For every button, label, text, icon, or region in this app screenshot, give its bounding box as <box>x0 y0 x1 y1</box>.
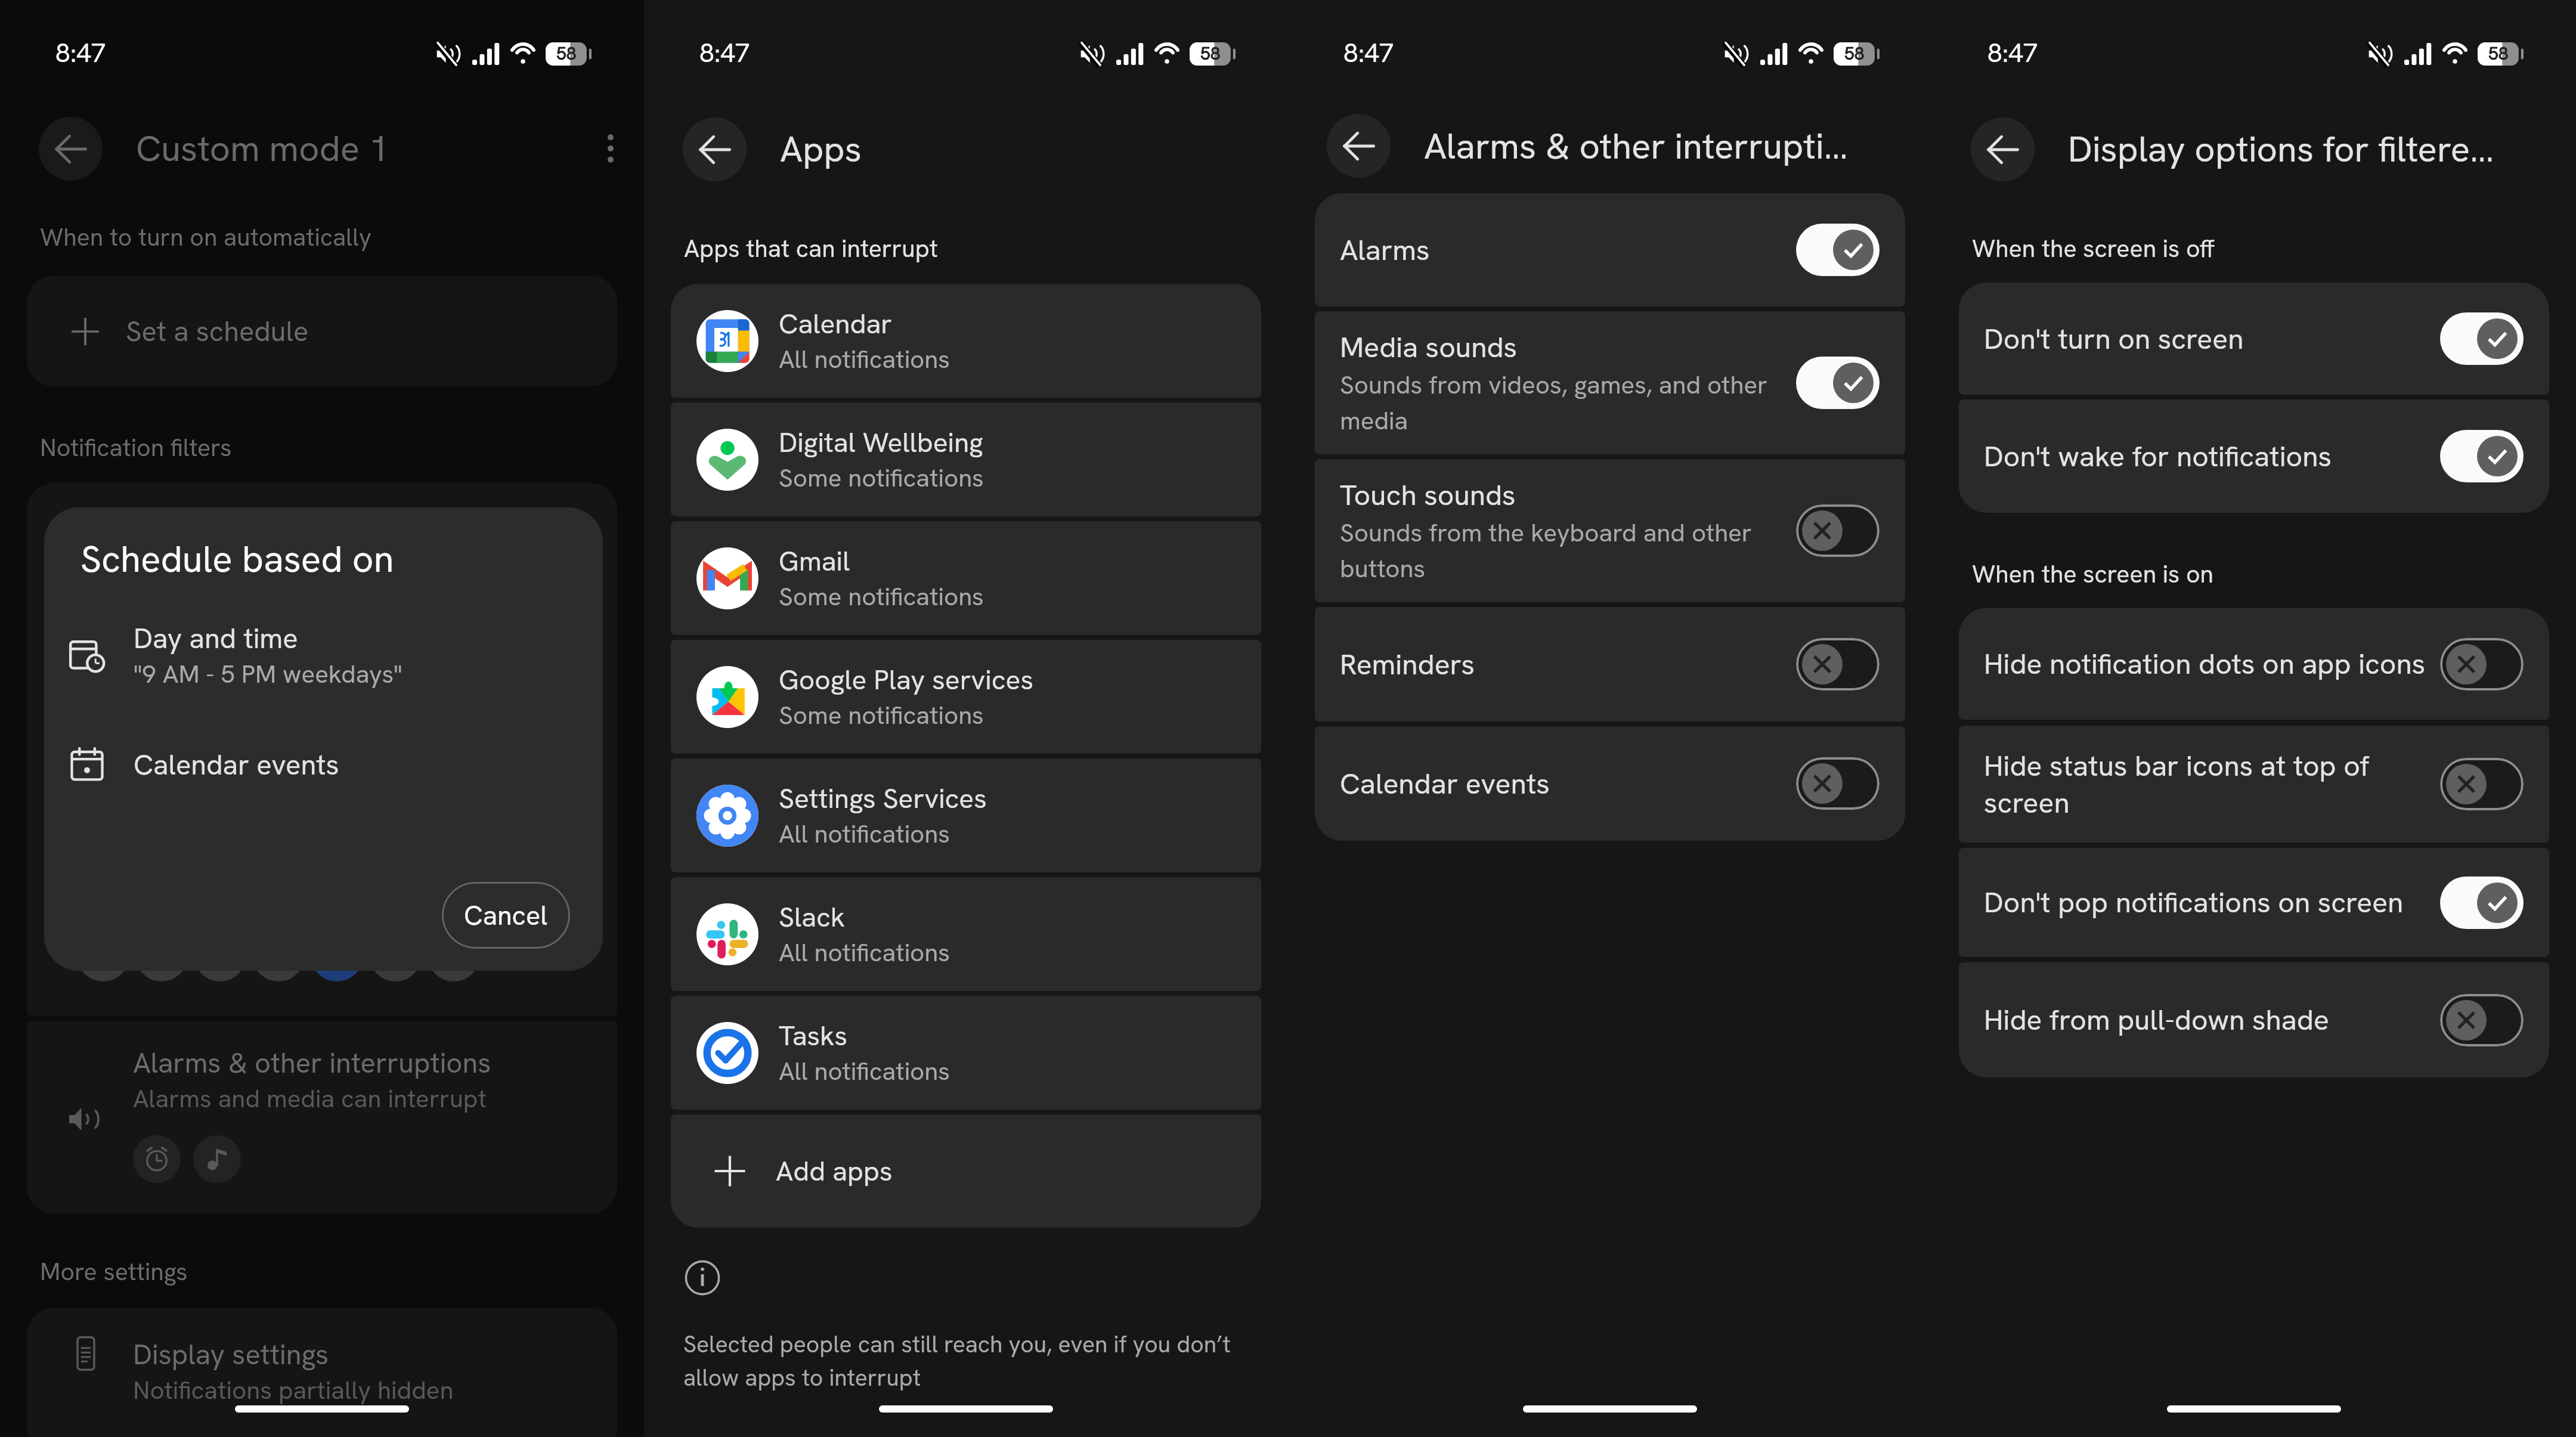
staticText: Don't pop notifications on screen <box>1984 884 2404 921</box>
staticText: All notifications <box>779 936 950 969</box>
staticText: Media sounds <box>1340 329 1518 366</box>
staticText: Notifications partially hidden <box>133 1374 454 1407</box>
button[interactable]: Back <box>39 117 103 181</box>
button[interactable]: Tasks <box>671 996 1261 1110</box>
staticText: 8:47 <box>699 36 750 70</box>
staticText: Alarms & other interruptions <box>133 1045 491 1081</box>
button[interactable]: Hide status bar icons at top of screen <box>1959 726 2549 843</box>
staticText: Alarms <box>1340 231 1430 269</box>
staticText: Add apps <box>776 1153 893 1189</box>
button[interactable]: Media allowed <box>193 1135 241 1183</box>
button[interactable]: Toggle off <box>2440 638 2524 690</box>
staticText: Set a schedule <box>126 313 309 349</box>
staticText: Reminders <box>1340 646 1475 683</box>
button[interactable]: Alarms allowed <box>133 1135 181 1183</box>
button[interactable]: Don't wake for notifications <box>1959 399 2549 513</box>
button[interactable]: Back <box>683 117 747 181</box>
button[interactable]: Day and time <box>44 615 603 695</box>
button[interactable]: Toggle on <box>1796 357 1880 409</box>
staticText: Display settings <box>133 1336 329 1373</box>
button[interactable]: Toggle off <box>1796 757 1880 810</box>
button[interactable]: Add apps <box>671 1114 1261 1228</box>
staticText: Some notifications <box>779 580 984 613</box>
button[interactable]: Toggle on <box>1796 224 1880 276</box>
staticText: Sounds from the keyboard and other butto… <box>1340 516 1778 585</box>
staticText: Digital Wellbeing <box>779 425 983 460</box>
staticText: Calendar events <box>1340 765 1550 803</box>
button[interactable]: Hide notification dots on app icons <box>1959 608 2549 720</box>
staticText: 58 <box>2488 42 2509 65</box>
staticText: Tasks <box>779 1018 848 1054</box>
staticText: 58 <box>1200 42 1221 65</box>
button[interactable]: Reminders <box>1315 607 1905 721</box>
button[interactable]: Google Play services <box>671 640 1261 754</box>
button[interactable]: Alarms <box>1315 193 1905 306</box>
button[interactable]: Digital Wellbeing <box>671 402 1261 516</box>
staticText: Settings Services <box>779 781 987 816</box>
button[interactable]: Back <box>1327 114 1391 178</box>
staticText: Apps that can interrupt <box>684 233 938 264</box>
button[interactable]: Set a schedule <box>27 275 617 386</box>
button[interactable]: Toggle off <box>1796 504 1880 557</box>
staticText: Custom mode 1 <box>136 125 389 172</box>
button[interactable]: More options <box>583 121 638 176</box>
staticText: When to turn on automatically <box>40 221 372 253</box>
staticText: Slack <box>779 899 846 935</box>
staticText: Display options for filtere… <box>2068 126 2494 172</box>
button[interactable]: Calendar events <box>44 742 603 788</box>
staticText: Some notifications <box>779 462 984 494</box>
staticText: All notifications <box>779 343 950 376</box>
button[interactable]: Toggle off <box>2440 994 2524 1046</box>
staticText: All notifications <box>779 817 950 850</box>
staticText: Apps <box>780 126 862 172</box>
button[interactable]: Toggle on <box>2440 877 2524 929</box>
staticText: 58 <box>1844 42 1865 65</box>
staticText: Calendar <box>779 306 892 342</box>
staticText: Notification filters <box>40 432 232 463</box>
button[interactable]: Slack <box>671 877 1261 991</box>
button[interactable]: More information <box>685 1260 720 1296</box>
button[interactable]: Hide from pull-down shade <box>1959 962 2549 1077</box>
staticText: Alarms and media can interrupt <box>133 1082 487 1115</box>
staticText: "9 AM - 5 PM weekdays" <box>134 658 402 690</box>
button[interactable]: Back <box>1971 117 2035 181</box>
staticText: When the screen is on <box>1972 558 2213 590</box>
staticText: Schedule based on <box>80 535 394 583</box>
button[interactable]: Media sounds <box>1315 311 1905 454</box>
staticText: Touch sounds <box>1340 476 1516 514</box>
button[interactable]: Display settings <box>27 1308 617 1437</box>
button[interactable]: Settings Services <box>671 758 1261 872</box>
button[interactable]: Toggle off <box>2440 758 2524 810</box>
staticText: Google Play services <box>779 662 1034 698</box>
staticText: 8:47 <box>1987 36 2038 70</box>
staticText: 8:47 <box>1343 36 1394 70</box>
staticText: When the screen is off <box>1972 233 2215 264</box>
button[interactable]: Touch sounds <box>1315 459 1905 602</box>
staticText: Selected people can still reach you, eve… <box>683 1329 1272 1393</box>
staticText: 8:47 <box>55 36 106 70</box>
button[interactable]: Don't turn on screen <box>1959 283 2549 395</box>
staticText: Don't turn on screen <box>1984 320 2244 358</box>
staticText: Gmail <box>779 543 850 579</box>
staticText: Hide status bar icons at top of screen <box>1984 747 2404 821</box>
staticText: Cancel <box>464 898 548 933</box>
button[interactable] <box>27 483 617 1016</box>
button[interactable]: Toggle on <box>2440 312 2524 365</box>
staticText: More settings <box>40 1256 188 1287</box>
staticText: Day and time <box>134 620 298 656</box>
button[interactable]: Calendar <box>671 284 1261 398</box>
staticText: Calendar events <box>134 747 339 783</box>
staticText: Hide from pull-down shade <box>1984 1001 2329 1039</box>
button[interactable]: Don't pop notifications on screen <box>1959 848 2549 957</box>
staticText: All notifications <box>779 1055 950 1088</box>
staticText: Hide notification dots on app icons <box>1984 645 2426 683</box>
button[interactable]: Alarms & other interruptions <box>27 1021 617 1214</box>
button[interactable]: Gmail <box>671 521 1261 635</box>
button[interactable]: Cancel <box>442 882 570 949</box>
staticText: Some notifications <box>779 699 984 732</box>
staticText: Sounds from videos, games, and other med… <box>1340 368 1778 437</box>
button[interactable]: Toggle on <box>2440 430 2524 482</box>
button[interactable]: Calendar events <box>1315 726 1905 841</box>
button[interactable]: Toggle off <box>1796 638 1880 690</box>
staticText: Alarms & other interrupti… <box>1424 123 1848 169</box>
